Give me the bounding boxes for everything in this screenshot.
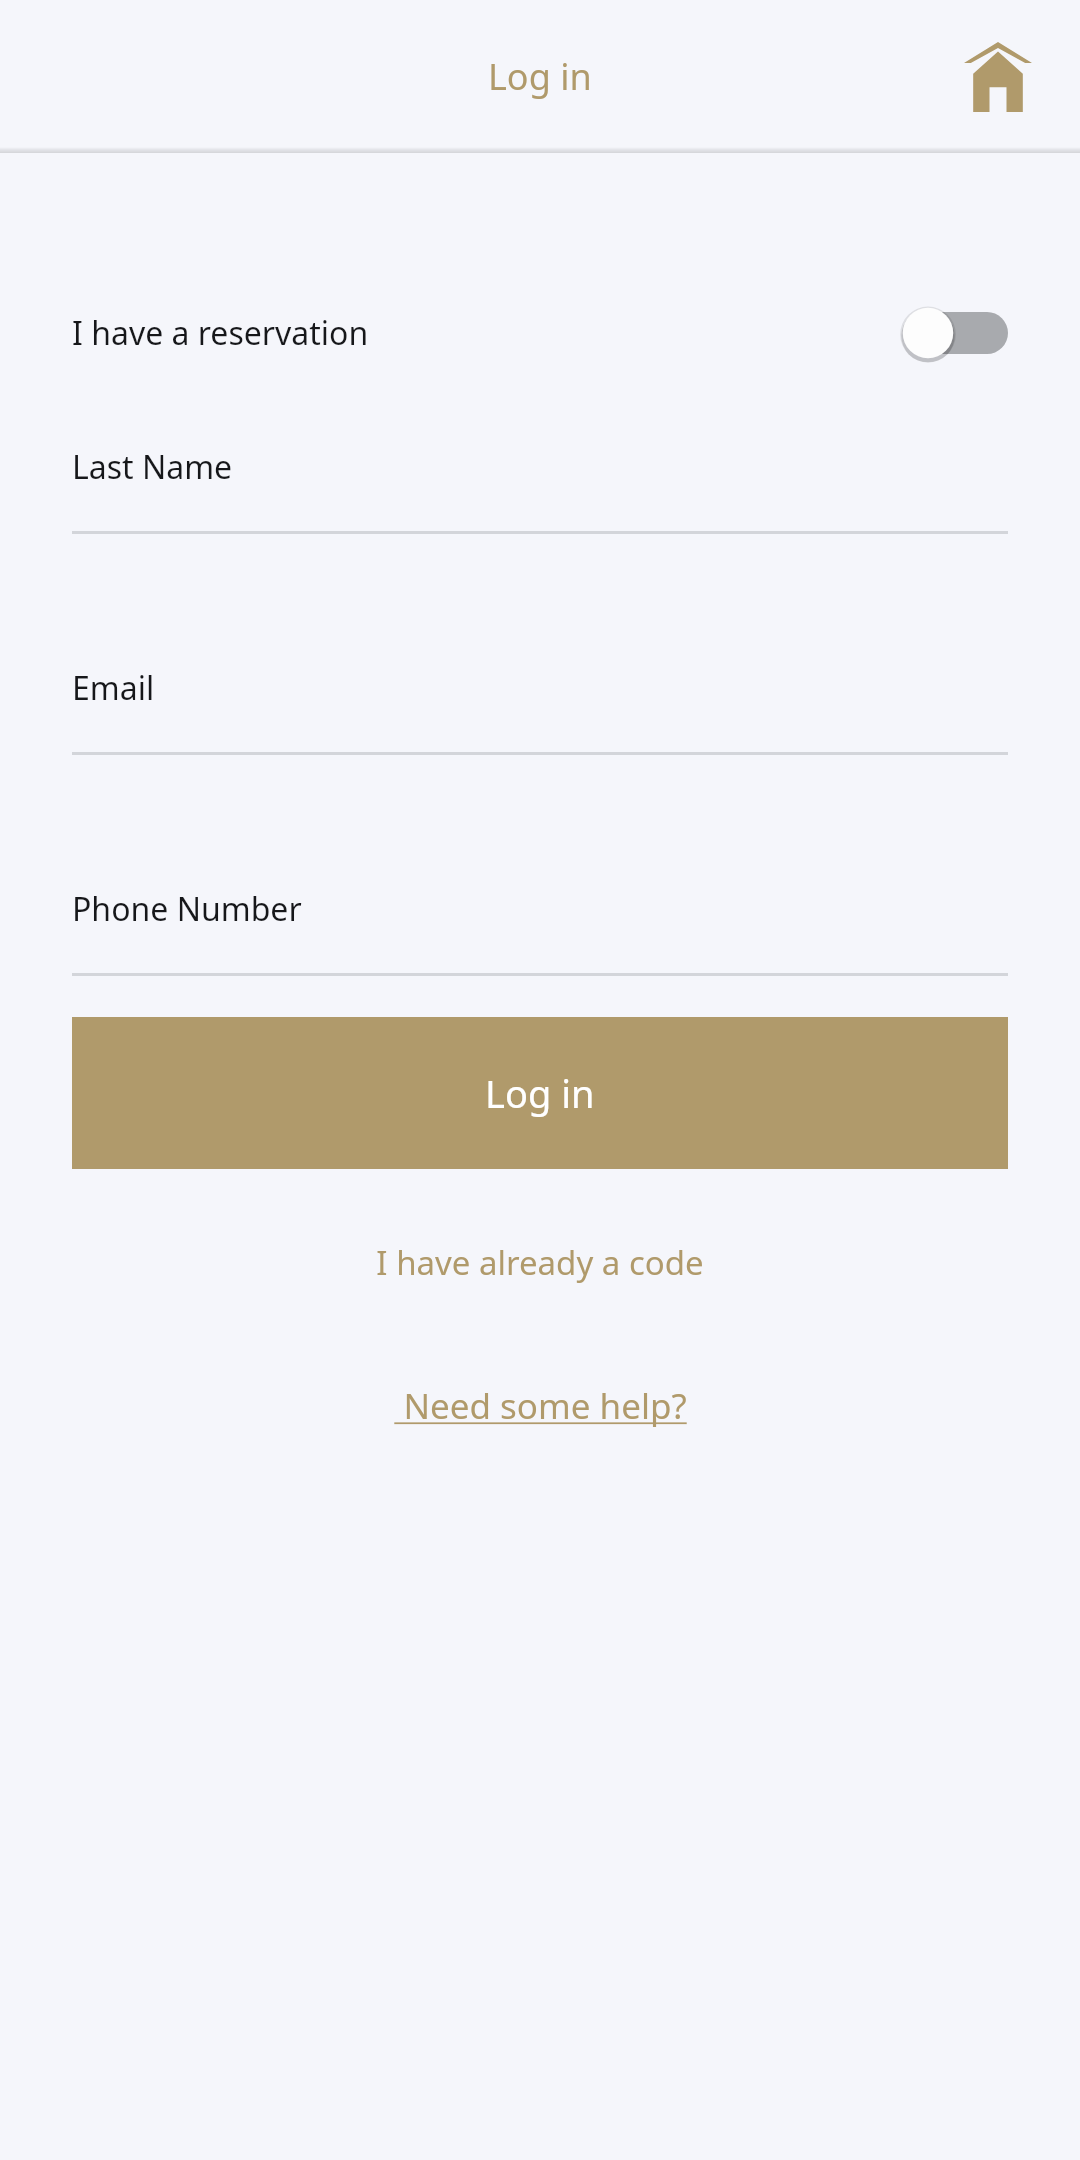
staticText: I have a reservation <box>72 311 369 355</box>
staticText: Need some help? <box>394 1382 687 1430</box>
button[interactable]: I have a reservation toggle <box>904 304 1008 362</box>
staticText: Log in <box>488 52 592 101</box>
staticText: Email <box>72 666 155 710</box>
staticText: Phone Number <box>72 887 302 931</box>
staticText: I have already a code <box>376 1240 704 1285</box>
button[interactable]: Log in <box>72 1017 1008 1169</box>
staticText: Last Name <box>72 445 233 489</box>
button[interactable]: I have already a code <box>72 1219 1008 1305</box>
button[interactable]: I have a reservation <box>72 283 1008 383</box>
staticText: Log in <box>485 1067 595 1119</box>
button[interactable]: Need some help? <box>72 1367 1008 1445</box>
button[interactable]: Home <box>950 29 1046 125</box>
